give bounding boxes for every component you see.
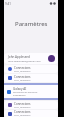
button[interactable]: Connexions	[4, 65, 58, 73]
staticText: Découvrez les fonctions	[13, 91, 38, 94]
staticText: Wi-Fi, Bluetooth	[14, 79, 31, 82]
staticText: intelligentes	[13, 94, 26, 97]
staticText: Paramètres	[15, 20, 48, 28]
button[interactable]: Galaxy AI	[4, 83, 58, 100]
staticText: Galaxy AI	[13, 87, 27, 91]
button[interactable]: Connexions	[4, 101, 58, 109]
staticText: Connexions	[14, 102, 31, 106]
button[interactable]: Connexions	[4, 74, 58, 82]
button[interactable]: Connexions	[4, 110, 58, 117]
staticText: John Appleseed	[8, 55, 30, 59]
button[interactable]: John Appleseed	[4, 53, 58, 64]
staticText: Connexions	[14, 66, 31, 70]
staticText: john.appleseed@gmail.com	[8, 59, 41, 62]
staticText: 9:41	[5, 2, 11, 6]
staticText: Wi-Fi, Bluetooth	[14, 114, 31, 117]
staticText: Wi-Fi, Bluetooth	[14, 70, 31, 73]
staticText: Wi-Fi, Bluetooth	[14, 106, 31, 109]
staticText: Connexions	[14, 110, 31, 114]
staticText: Connexions	[14, 75, 31, 79]
